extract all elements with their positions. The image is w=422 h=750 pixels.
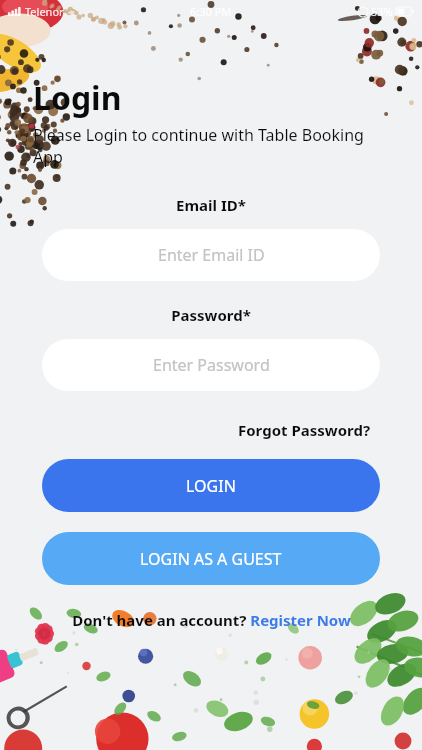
- staticText: Login: [33, 76, 122, 120]
- button[interactable]: Don't have an account? Register Now: [62, 607, 361, 633]
- button[interactable]: LOGIN AS A GUEST: [42, 532, 380, 585]
- staticText: Enter Password: [153, 354, 270, 376]
- button[interactable]: Enter Email ID: [42, 229, 380, 281]
- staticText: 53%: [371, 4, 393, 19]
- staticText: Email ID*: [0, 195, 422, 215]
- staticText: Please Login to continue with Table Book…: [33, 124, 377, 168]
- button[interactable]: Forgot Password?: [187, 417, 422, 443]
- button[interactable]: LOGIN: [42, 459, 380, 512]
- staticText: LOGIN AS A GUEST: [140, 548, 282, 570]
- staticText: 6:30 PM: [190, 4, 232, 19]
- button[interactable]: Enter Password: [42, 339, 380, 391]
- staticText: Password*: [0, 305, 422, 325]
- staticText: Telenor: [25, 4, 64, 19]
- staticText: Enter Email ID: [158, 244, 265, 266]
- staticText: LOGIN: [186, 475, 236, 497]
